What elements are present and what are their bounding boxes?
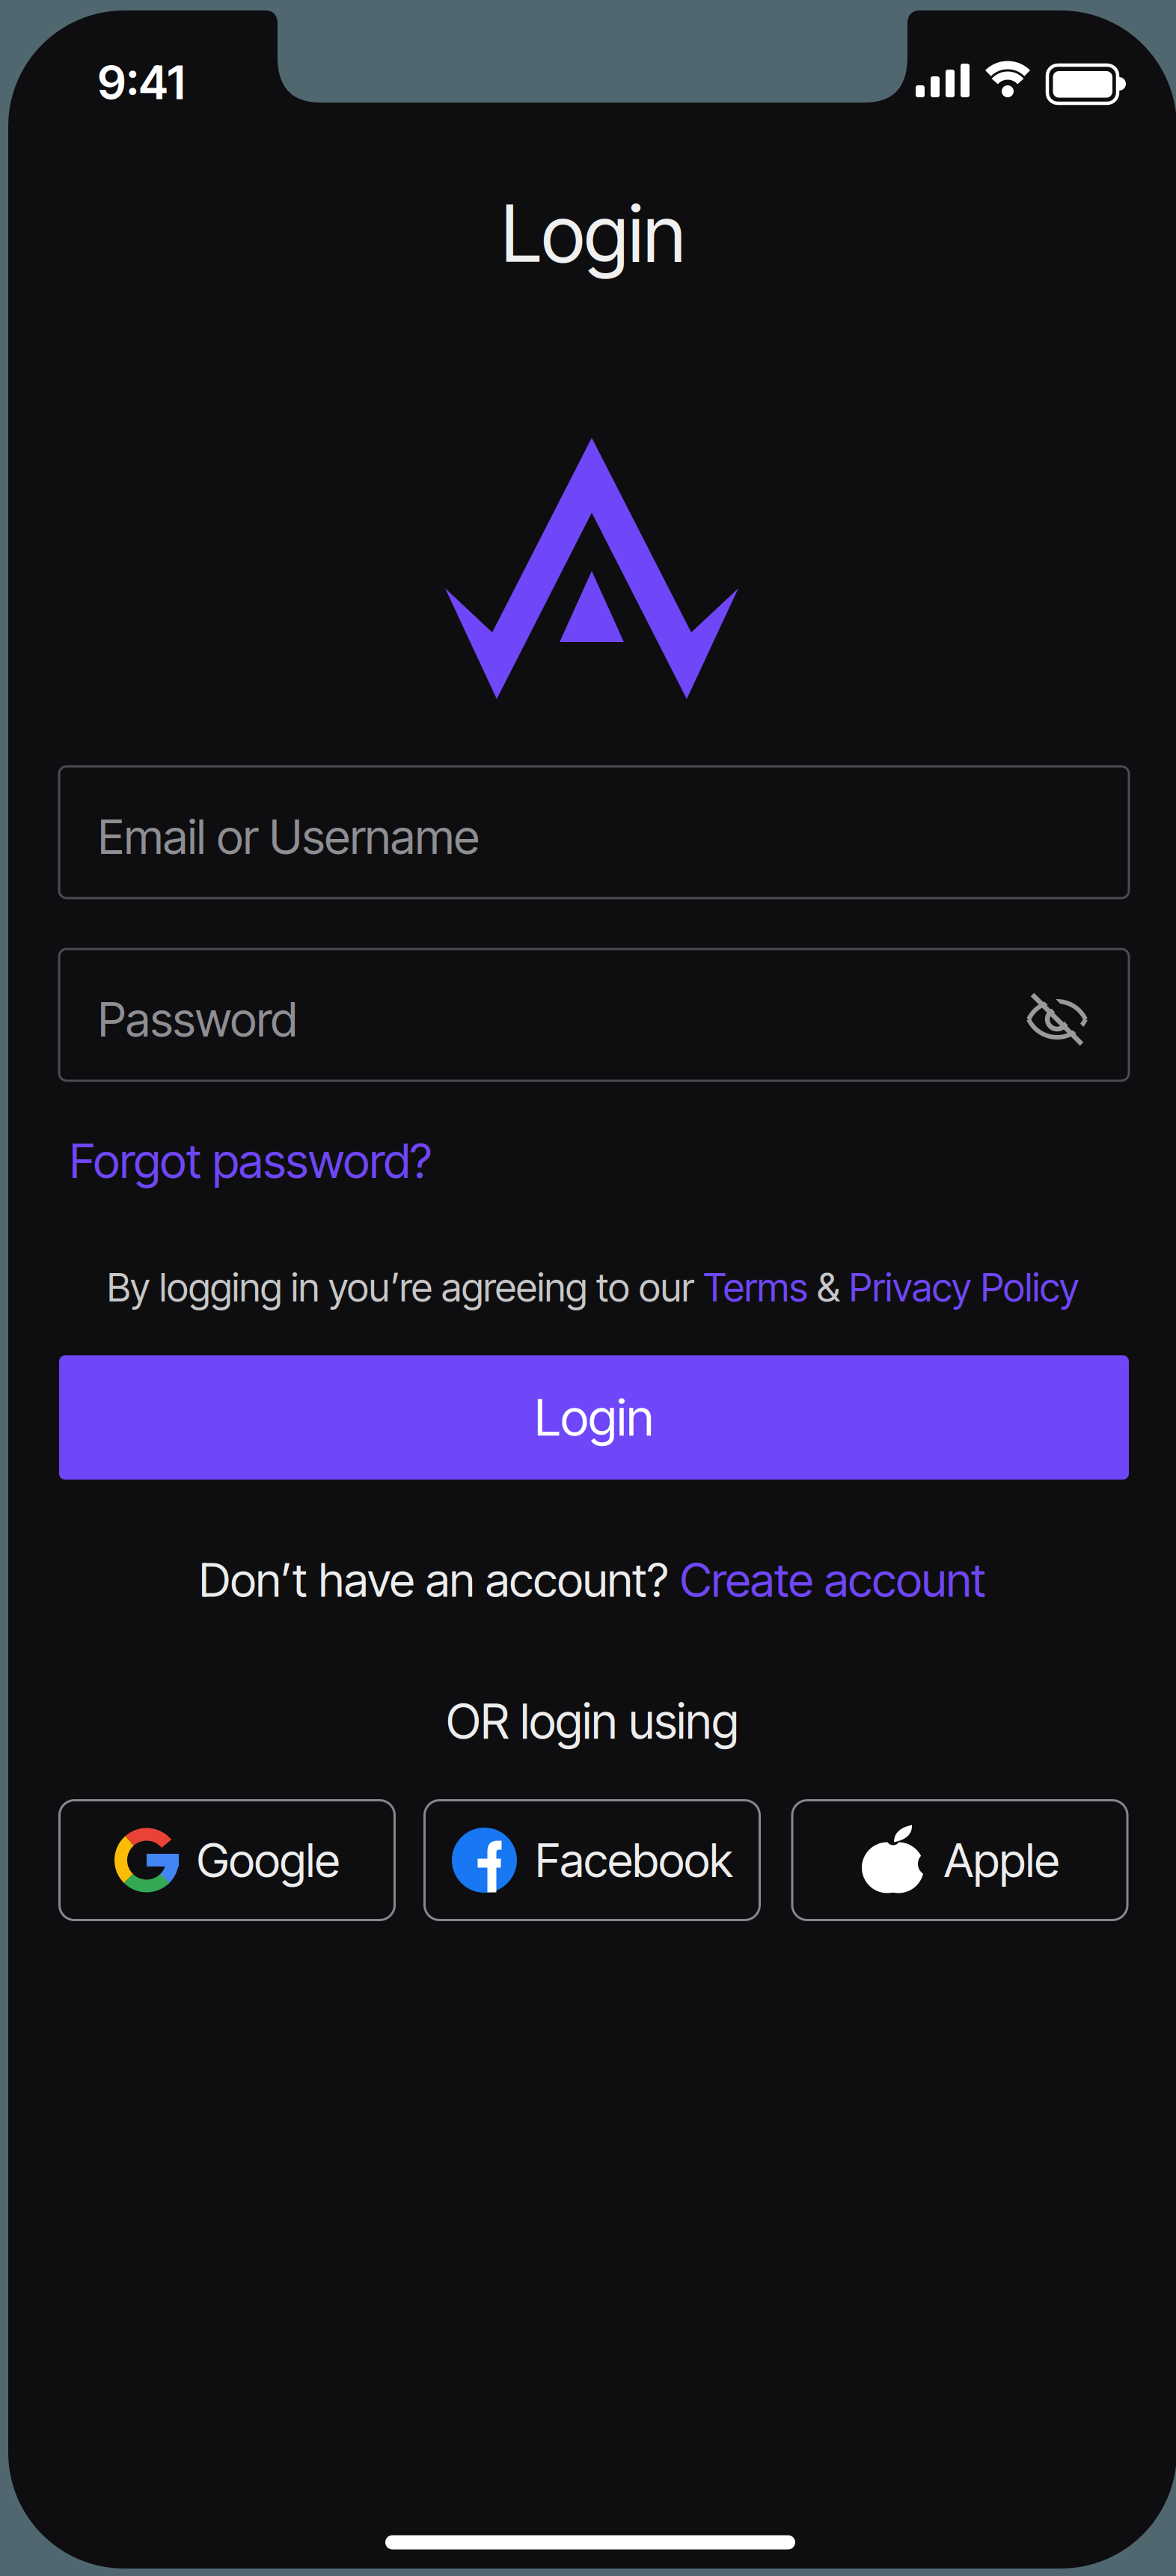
staticText: Login <box>535 1387 653 1448</box>
button[interactable]: Password <box>59 949 1129 1081</box>
staticText: 9:41 <box>98 54 185 110</box>
staticText: Apple <box>944 1832 1059 1888</box>
button[interactable]: Privacy Policy <box>849 1264 1079 1311</box>
button[interactable]: Apple <box>792 1800 1127 1920</box>
staticText: Password <box>98 991 297 1048</box>
staticText: Email or Username <box>98 808 480 865</box>
staticText: Don’t have an account? <box>199 1552 680 1608</box>
staticText: Create account <box>680 1552 986 1608</box>
staticText: Login <box>501 186 685 281</box>
staticText: Google <box>197 1832 340 1888</box>
staticText: Terms <box>703 1264 808 1311</box>
button[interactable]: Forgot password? <box>70 1132 1118 1189</box>
staticText: & <box>808 1264 849 1311</box>
staticText: OR login using <box>446 1692 739 1750</box>
staticText: By logging in you’re agreeing to our <box>107 1264 703 1311</box>
button[interactable]: Create account <box>680 1552 986 1608</box>
button[interactable]: Email or Username <box>59 766 1129 898</box>
button[interactable]: Google <box>59 1800 395 1920</box>
staticText: Forgot password? <box>70 1132 432 1189</box>
button[interactable]: Facebook <box>425 1800 760 1920</box>
staticText: Privacy Policy <box>849 1264 1079 1311</box>
staticText: Facebook <box>535 1832 733 1888</box>
button[interactable]: Login <box>59 1355 1129 1480</box>
button[interactable]: Terms <box>703 1264 808 1311</box>
